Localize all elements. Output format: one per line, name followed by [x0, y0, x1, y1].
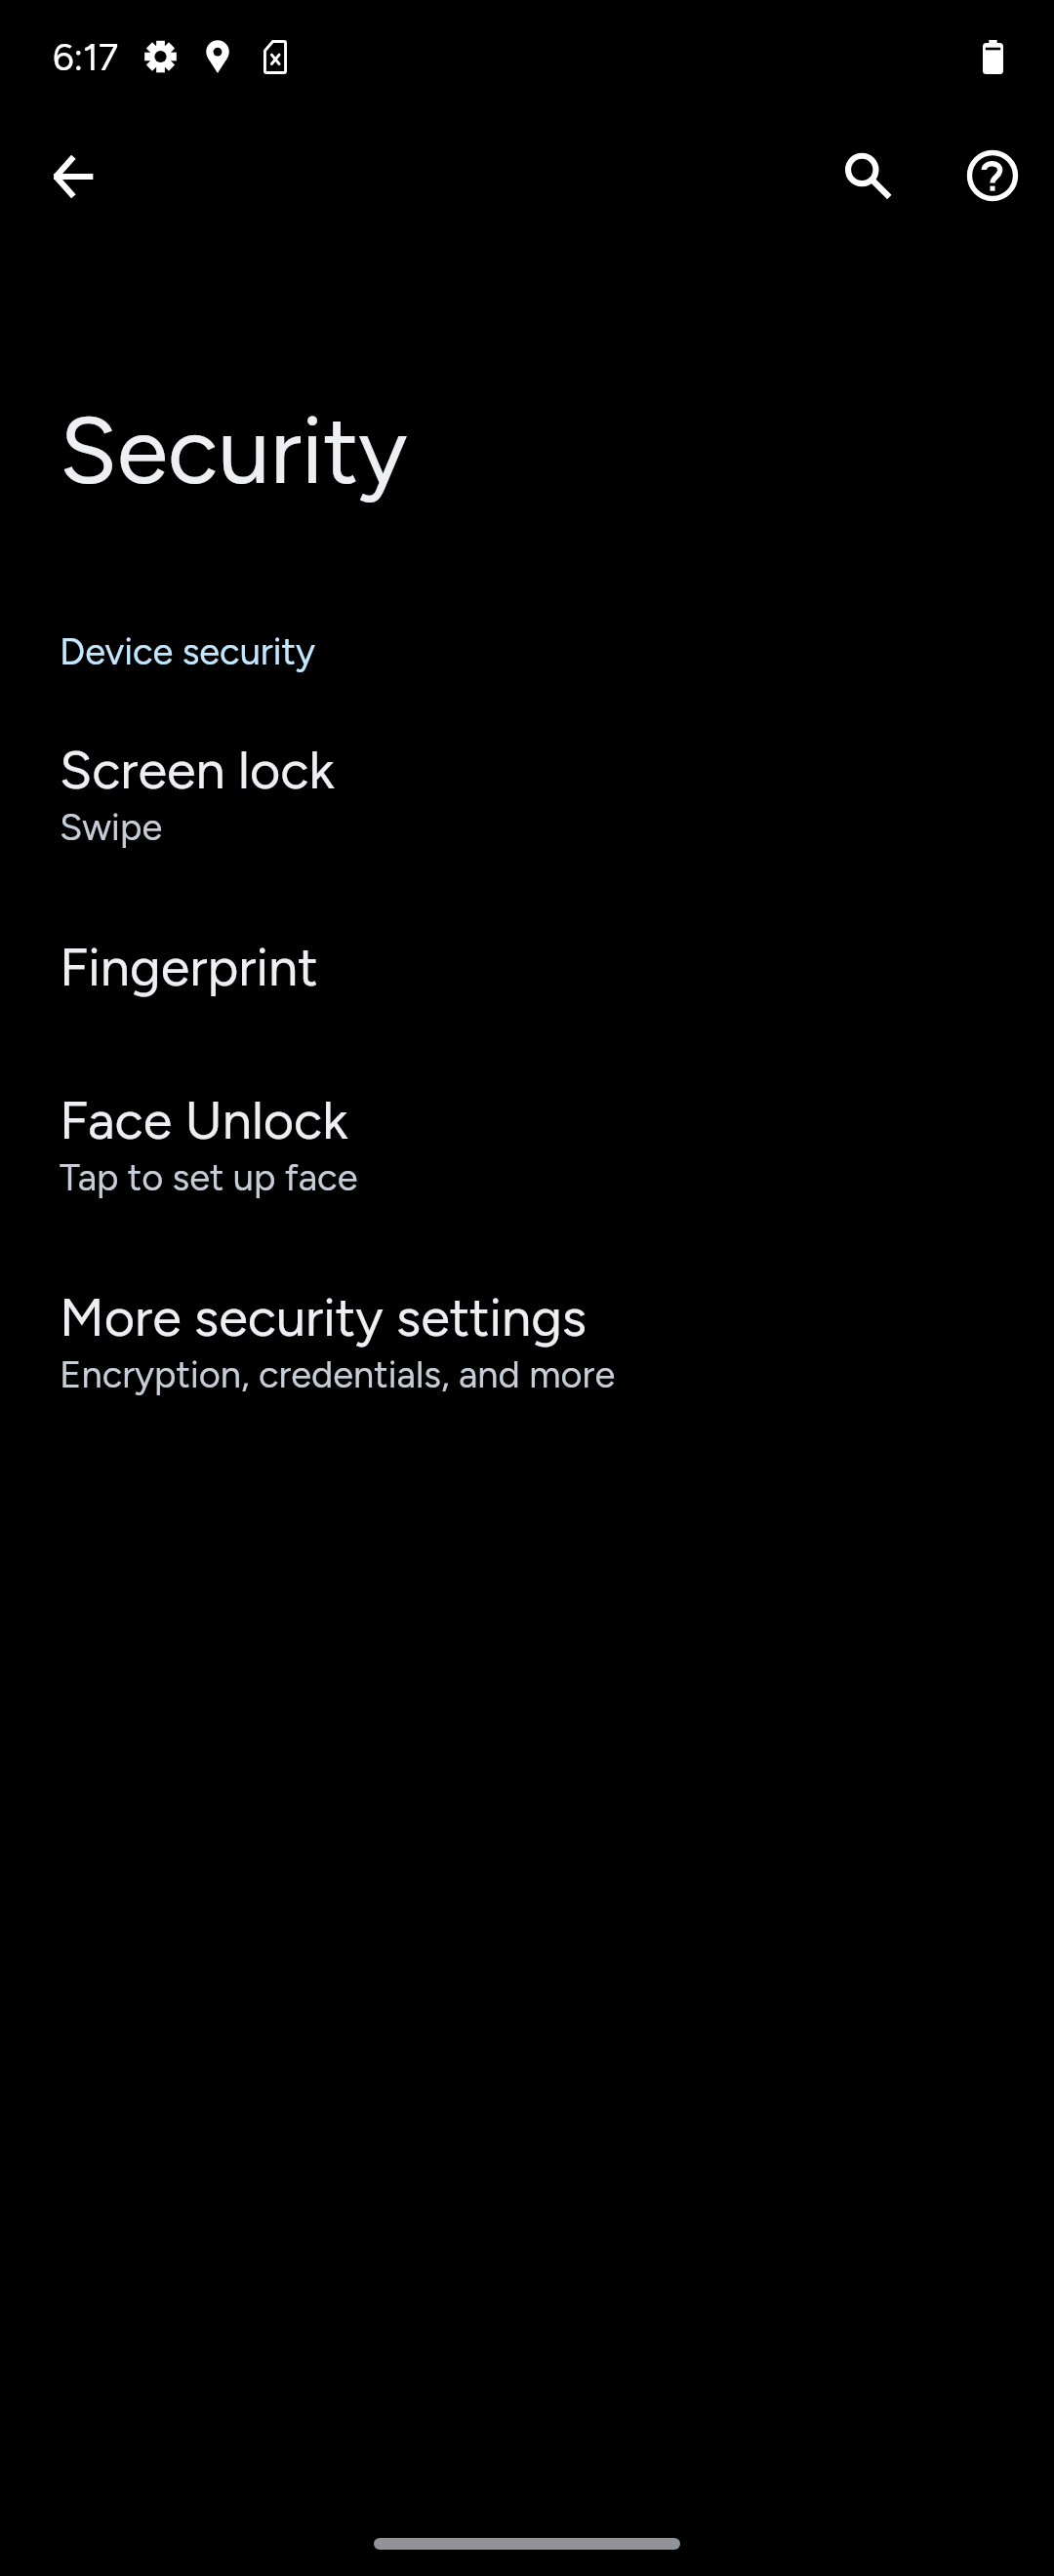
- button[interactable]: More security settings: [0, 1248, 1054, 1412]
- staticText: Security: [60, 394, 408, 506]
- button[interactable]: Search: [810, 119, 927, 236]
- staticText: 6:17: [53, 35, 119, 80]
- button[interactable]: Face Unlock: [0, 1051, 1054, 1215]
- staticText: Face Unlock: [60, 1089, 348, 1152]
- staticText: Device security: [60, 629, 315, 674]
- staticText: Tap to set up face: [60, 1155, 358, 1200]
- button[interactable]: Help: [934, 117, 1051, 234]
- staticText: Screen lock: [60, 739, 335, 802]
- staticText: More security settings: [60, 1286, 587, 1349]
- button[interactable]: Screen lock: [0, 701, 1054, 865]
- button[interactable]: Fingerprint: [0, 898, 1054, 1019]
- staticText: Fingerprint: [60, 936, 318, 999]
- button[interactable]: Back: [14, 118, 131, 235]
- staticText: Swipe: [60, 805, 163, 850]
- staticText: Encryption, credentials, and more: [60, 1352, 616, 1397]
